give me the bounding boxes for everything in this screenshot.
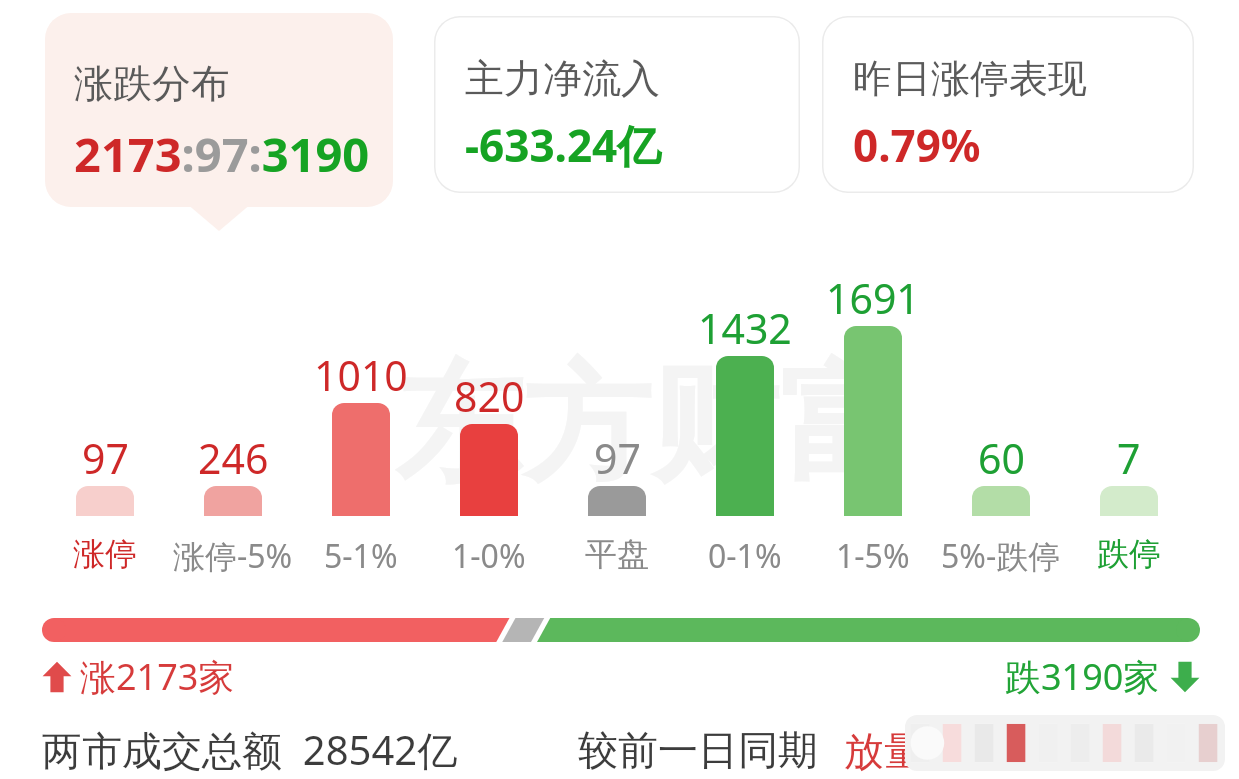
staticText: 1691 xyxy=(826,270,920,326)
other: Falling xyxy=(1170,660,1200,694)
button[interactable] xyxy=(460,424,518,516)
staticText: 1010 xyxy=(314,347,408,403)
staticText: 平盘 xyxy=(585,534,649,574)
staticText: 放量4 xyxy=(844,722,947,777)
staticText: 5-1% xyxy=(324,534,398,578)
button[interactable]: 昨日涨停表现 xyxy=(822,16,1194,193)
staticText: -633.24亿 xyxy=(465,115,662,175)
staticText: 1-5% xyxy=(836,534,910,578)
button[interactable] xyxy=(42,618,1200,642)
staticText: 涨2173家 xyxy=(80,652,235,701)
staticText: 7 xyxy=(1117,430,1141,486)
staticText: 昨日涨停表现 xyxy=(853,54,1087,103)
button[interactable] xyxy=(1100,486,1158,516)
staticText: 60 xyxy=(978,430,1025,486)
staticText: 97 xyxy=(594,430,641,486)
staticText: 涨跌分布 xyxy=(74,59,230,108)
button[interactable]: 涨跌分布 xyxy=(45,13,393,207)
staticText: 跌停 xyxy=(1097,534,1161,574)
staticText: 97 xyxy=(82,430,129,486)
staticText: 东方财富 xyxy=(395,345,907,506)
staticText: 0-1% xyxy=(708,534,782,578)
button[interactable] xyxy=(588,486,646,516)
staticText: 1432 xyxy=(698,300,792,356)
button[interactable]: Rising xyxy=(42,652,235,701)
staticText: 两市成交总额 28542亿 xyxy=(42,722,458,777)
button[interactable] xyxy=(332,403,390,516)
button[interactable] xyxy=(972,486,1030,516)
staticText: 涨停-5% xyxy=(173,534,293,578)
staticText: 跌3190家 xyxy=(1005,652,1160,701)
button[interactable] xyxy=(844,326,902,516)
staticText: 0.79% xyxy=(853,115,981,175)
staticText: 涨停 xyxy=(73,534,137,574)
staticText: 820 xyxy=(454,368,525,424)
staticText: 2173:97:3190 xyxy=(74,122,370,186)
button[interactable]: 主力净流入 xyxy=(434,16,800,193)
staticText: 1-0% xyxy=(452,534,526,578)
button[interactable] xyxy=(716,356,774,516)
button[interactable] xyxy=(76,486,134,516)
staticText: 较前一日同期 xyxy=(578,725,818,775)
staticText: 主力净流入 xyxy=(465,54,660,103)
staticText: 5%-跌停 xyxy=(941,534,1061,578)
button[interactable]: 跌3190家 xyxy=(1005,652,1200,701)
other: Rising xyxy=(42,660,72,694)
staticText: 246 xyxy=(198,430,269,486)
button[interactable] xyxy=(204,486,262,516)
